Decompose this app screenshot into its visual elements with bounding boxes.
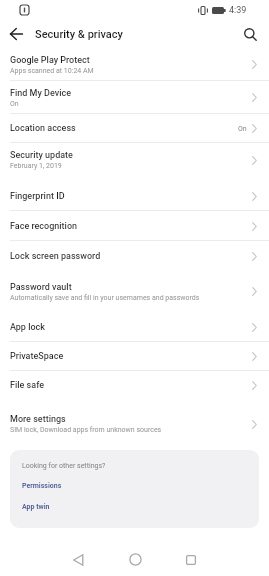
staticText: 4:39 bbox=[229, 5, 247, 16]
staticText: On bbox=[238, 125, 247, 133]
button[interactable]: App lock bbox=[0, 312, 269, 342]
staticText: App lock bbox=[10, 322, 45, 333]
button[interactable]: Google Play Protect bbox=[0, 48, 269, 81]
button[interactable]: File safe bbox=[0, 371, 269, 400]
button[interactable]: Find My Device bbox=[0, 81, 269, 114]
staticText: February 1, 2019 bbox=[10, 162, 62, 170]
staticText: Automatically save and fill in your user… bbox=[10, 294, 200, 302]
button[interactable]: App twin bbox=[22, 503, 50, 511]
button[interactable] bbox=[129, 553, 142, 566]
button[interactable]: Permissions bbox=[22, 482, 62, 490]
button[interactable]: Lock screen password bbox=[0, 241, 269, 271]
button[interactable] bbox=[73, 554, 84, 566]
staticText: Lock screen password bbox=[10, 251, 101, 262]
button[interactable]: Security update bbox=[0, 143, 269, 177]
staticText: File safe bbox=[10, 380, 45, 391]
staticText: Location access bbox=[10, 123, 76, 134]
button[interactable] bbox=[10, 28, 23, 40]
staticText: Password vault bbox=[10, 282, 72, 293]
staticText: PrivateSpace bbox=[10, 351, 64, 362]
button[interactable]: Face recognition bbox=[0, 211, 269, 241]
staticText: Face recognition bbox=[10, 221, 78, 232]
button[interactable] bbox=[186, 555, 196, 565]
staticText: Fingerprint ID bbox=[10, 191, 65, 202]
button[interactable] bbox=[244, 28, 257, 41]
staticText: On bbox=[10, 100, 19, 108]
button[interactable]: Fingerprint ID bbox=[0, 181, 269, 211]
button[interactable]: Location access bbox=[0, 114, 269, 143]
staticText: Looking for other settings? bbox=[22, 462, 106, 470]
staticText: More settings bbox=[10, 414, 66, 425]
staticText: Security update bbox=[10, 150, 73, 161]
staticText: Google Play Protect bbox=[10, 55, 90, 66]
staticText: Security & privacy bbox=[35, 28, 123, 41]
button[interactable]: PrivateSpace bbox=[0, 342, 269, 371]
button[interactable]: Password vault bbox=[0, 275, 269, 308]
staticText: Apps scanned at 10:24 AM bbox=[10, 67, 94, 75]
staticText: SIM lock, Download apps from unknown sou… bbox=[10, 426, 162, 434]
staticText: Find My Device bbox=[10, 88, 72, 99]
button[interactable]: More settings bbox=[0, 407, 269, 441]
